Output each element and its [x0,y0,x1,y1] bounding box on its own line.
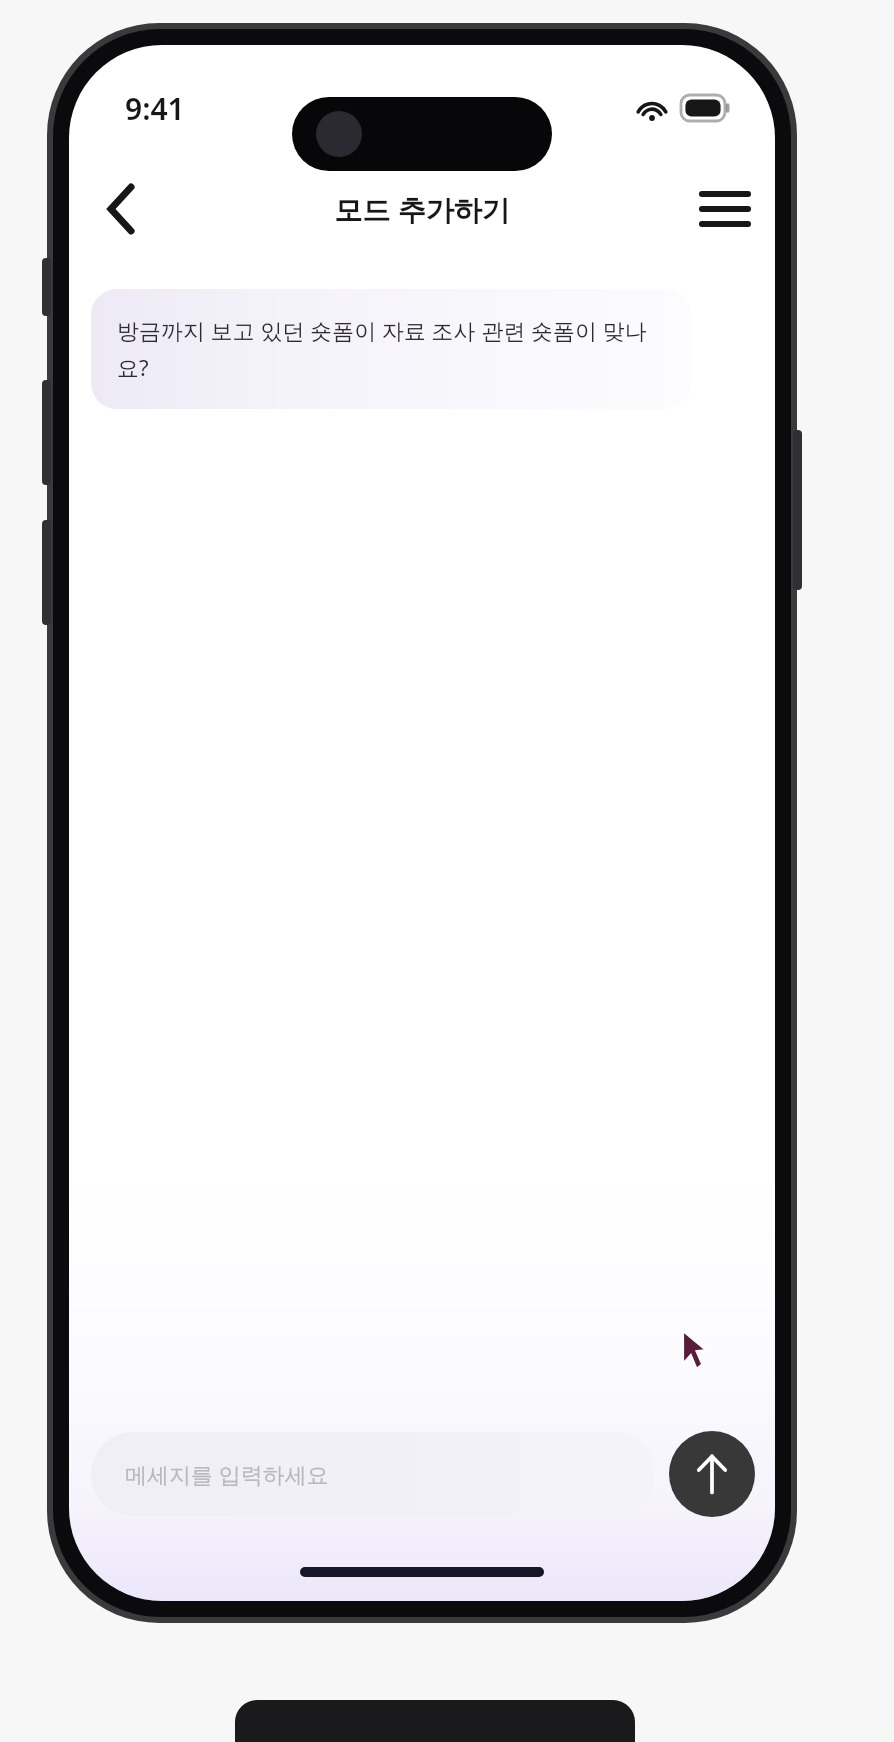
button[interactable]: Send [669,1431,755,1517]
button[interactable]: 메세지를 입력하세요 [91,1432,655,1516]
staticText: 9:41 [125,88,185,129]
staticText: 모드 추가하기 [334,190,510,228]
staticText: 메세지를 입력하세요 [125,1459,329,1489]
button[interactable]: Menu [691,175,759,243]
button[interactable]: 방금까지 보고 있던 숏폼이 자료 조사 관련 숏폼이 맞나요? [91,289,691,409]
staticText: 방금까지 보고 있던 숏폼이 자료 조사 관련 숏폼이 맞나요? [117,315,665,383]
button[interactable]: Back [87,175,155,243]
